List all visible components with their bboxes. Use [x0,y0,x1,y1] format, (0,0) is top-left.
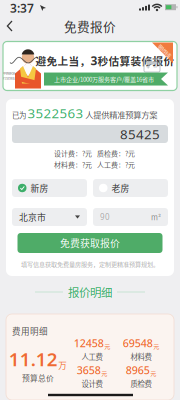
staticText: 元 [104,341,110,350]
staticText: 万 [58,359,67,371]
staticText: 老房 [111,182,129,194]
staticText: 新房 [30,182,48,194]
staticText: 85425 [120,125,160,143]
button[interactable]: 免费获取报价 [17,233,162,253]
staticText: 材料费：?元 [54,159,92,169]
staticText: m² [151,212,161,222]
staticText: 中国家装 行业领军 [3,70,15,80]
staticText: 秒估算装修报价 [97,53,174,68]
staticText: 设计费 [81,378,102,389]
staticText: 设计费：?元 [54,148,92,158]
staticText: 免费获取报价 [60,236,120,250]
button[interactable]: 老房 [93,179,168,197]
staticText: 材料费 [130,351,151,362]
staticText: 填写信息获取免费量房服务，定制更精准预算规划。 [21,260,159,268]
staticText: 元 [150,368,156,377]
staticText: 预算总价 [22,372,54,383]
staticText: 免费报价 [64,17,116,35]
staticText: 限时特惠 [156,48,172,54]
staticText: 元 [101,368,107,377]
staticText: 人工费 [81,351,102,362]
staticText: 报价明细 [68,284,112,300]
staticText: 3522563 [28,104,84,122]
staticText: 上市企业/1000万服务客户/覆盖16省市 [54,75,154,83]
staticText: 3658 [77,363,101,377]
staticText: 69548 [123,336,153,350]
staticText: 90 [100,212,110,222]
staticText: 12458 [74,336,104,350]
staticText: 11.12 [9,346,58,371]
staticText: 人工费：?元 [97,159,135,169]
staticText: 3 [90,52,97,68]
button[interactable]: 新房 [12,179,87,197]
staticText: 质检费 [130,378,151,389]
staticText: 已为 [12,109,26,120]
button[interactable]: 北京市 [12,208,87,226]
staticText: 8965 [126,363,150,377]
staticText: 人提供精准预算方案 [85,109,157,121]
staticText: 元 [153,341,159,350]
staticText: 3:37 [10,0,34,16]
staticText: 质检费：?元 [97,148,135,158]
button[interactable]: Back [0,16,22,35]
staticText: 避免上当， [35,53,90,68]
staticText: 北京市 [19,211,46,223]
staticText: 费用明细 [12,325,48,337]
